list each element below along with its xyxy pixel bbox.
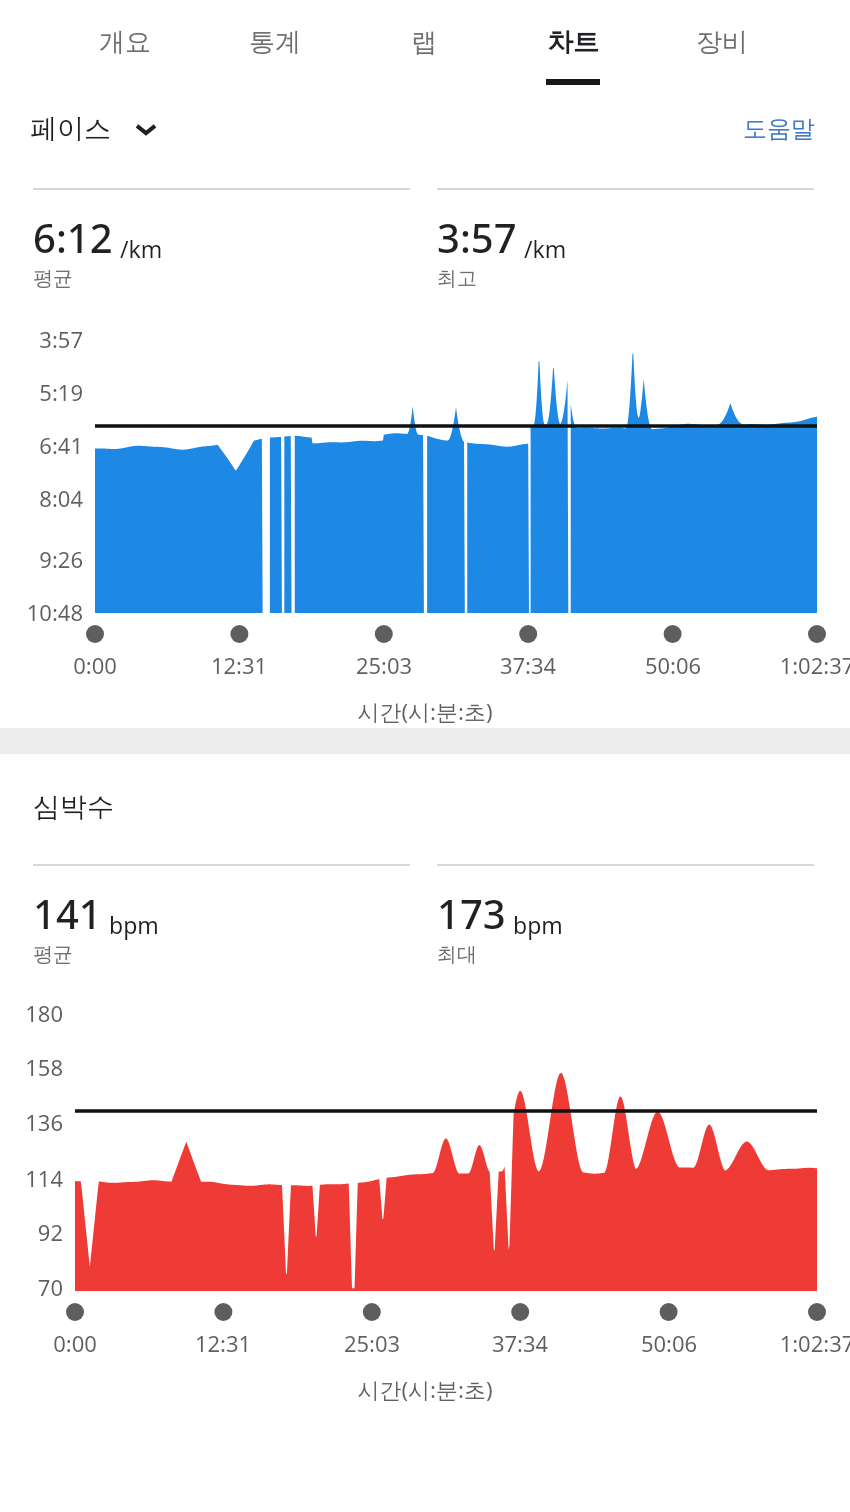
button[interactable]: 통계 xyxy=(203,0,347,96)
staticText: 도움말 xyxy=(743,114,815,144)
staticText: 6:41 xyxy=(0,430,83,460)
staticText: /km xyxy=(120,233,163,264)
staticText: 0:00 xyxy=(15,1328,135,1358)
staticText: 시간(시:분:초) xyxy=(0,1374,850,1404)
staticText: 9:26 xyxy=(0,544,83,574)
button[interactable]: 개요 xyxy=(53,0,197,96)
staticText: 1:02:37 xyxy=(757,650,850,680)
staticText: 6:12 xyxy=(33,210,113,264)
staticText: 개요 xyxy=(99,26,151,59)
button[interactable]: 랩 xyxy=(352,0,496,96)
staticText: 141 xyxy=(33,886,102,940)
staticText: 3:57 xyxy=(437,210,517,264)
staticText: 12:31 xyxy=(163,1328,283,1358)
staticText: bpm xyxy=(109,909,159,940)
staticText: 37:34 xyxy=(460,1328,580,1358)
staticText: 92 xyxy=(0,1217,63,1247)
staticText: 114 xyxy=(0,1163,63,1193)
staticText: 랩 xyxy=(411,26,437,59)
staticText: 평균 xyxy=(33,266,73,291)
staticText: 50:06 xyxy=(613,650,733,680)
staticText: 심박수 xyxy=(33,790,114,824)
staticText: 50:06 xyxy=(609,1328,729,1358)
staticText: 통계 xyxy=(249,26,301,59)
staticText: 10:48 xyxy=(0,597,83,627)
staticText: 5:19 xyxy=(0,377,83,407)
staticText: 최대 xyxy=(437,942,477,967)
staticText: 158 xyxy=(0,1052,63,1082)
staticText: 136 xyxy=(0,1107,63,1137)
staticText: 173 xyxy=(437,886,506,940)
staticText: 장비 xyxy=(696,26,748,59)
staticText: /km xyxy=(524,233,567,264)
staticText: 37:34 xyxy=(468,650,588,680)
staticText: 25:03 xyxy=(312,1328,432,1358)
staticText: 70 xyxy=(0,1272,63,1302)
staticText: 3:57 xyxy=(0,324,83,354)
button[interactable]: 도움말 xyxy=(743,114,815,144)
button[interactable]: 장비 xyxy=(650,0,794,96)
staticText: 차트 xyxy=(547,26,599,59)
staticText: 최고 xyxy=(437,266,477,291)
staticText: 평균 xyxy=(33,942,73,967)
button[interactable]: 페이스 xyxy=(30,112,159,146)
staticText: 0:00 xyxy=(35,650,155,680)
staticText: 12:31 xyxy=(179,650,299,680)
staticText: 1:02:37 xyxy=(757,1328,850,1358)
staticText: 25:03 xyxy=(324,650,444,680)
staticText: 8:04 xyxy=(0,483,83,513)
staticText: bpm xyxy=(513,909,563,940)
button[interactable]: 차트 xyxy=(501,0,645,96)
staticText: 180 xyxy=(0,998,63,1028)
staticText: 시간(시:분:초) xyxy=(0,696,850,726)
staticText: 페이스 xyxy=(30,112,111,146)
